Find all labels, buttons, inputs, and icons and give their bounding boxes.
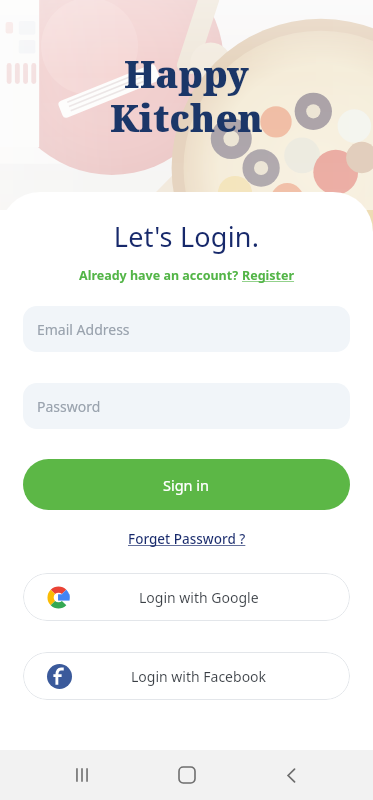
button[interactable]: Sign in xyxy=(23,459,350,510)
staticText: Forget Password ? xyxy=(128,530,246,548)
staticText: Email Address xyxy=(37,320,130,339)
button[interactable]: Login with Google xyxy=(23,573,350,621)
button[interactable]: Login with Facebook xyxy=(23,652,350,700)
button[interactable]: Email Address xyxy=(23,306,350,352)
staticText: Login with Facebook xyxy=(131,667,267,686)
button[interactable]: Recent apps xyxy=(59,752,105,798)
staticText: Already have an account? xyxy=(79,267,242,284)
staticText: Login with Google xyxy=(139,588,259,607)
staticText: Password xyxy=(37,397,101,416)
button[interactable]: Password xyxy=(23,383,350,429)
staticText: Happy xyxy=(124,48,249,98)
staticText: Register xyxy=(242,267,295,284)
button[interactable]: Forget Password ? xyxy=(23,530,350,548)
staticText: Sign in xyxy=(163,475,210,495)
staticText: Let's Login. xyxy=(23,218,350,255)
button[interactable]: Home xyxy=(164,752,210,798)
button[interactable]: Back xyxy=(268,752,314,798)
staticText: Kitchen xyxy=(110,92,263,142)
button[interactable]: Register xyxy=(242,267,295,284)
